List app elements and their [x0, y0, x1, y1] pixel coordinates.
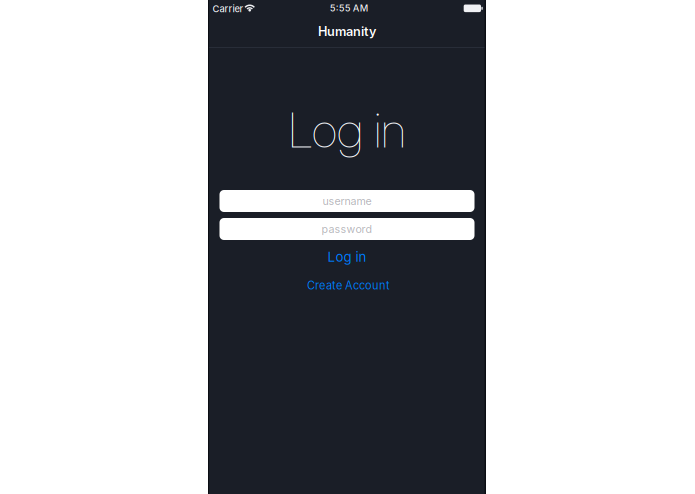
- staticText: Humanity: [318, 24, 376, 39]
- staticText: 5:55 AM: [330, 2, 369, 14]
- staticText: password: [321, 222, 372, 235]
- button[interactable]: password: [219, 218, 474, 240]
- staticText: Create Account: [307, 279, 390, 292]
- staticText: Log in: [327, 249, 366, 265]
- staticText: username: [322, 194, 371, 207]
- button[interactable]: username: [219, 190, 474, 212]
- button[interactable]: Create Account: [221, 277, 476, 293]
- staticText: Carrier: [212, 3, 243, 15]
- button[interactable]: Log in: [219, 247, 474, 267]
- staticText: Log in: [288, 101, 406, 159]
